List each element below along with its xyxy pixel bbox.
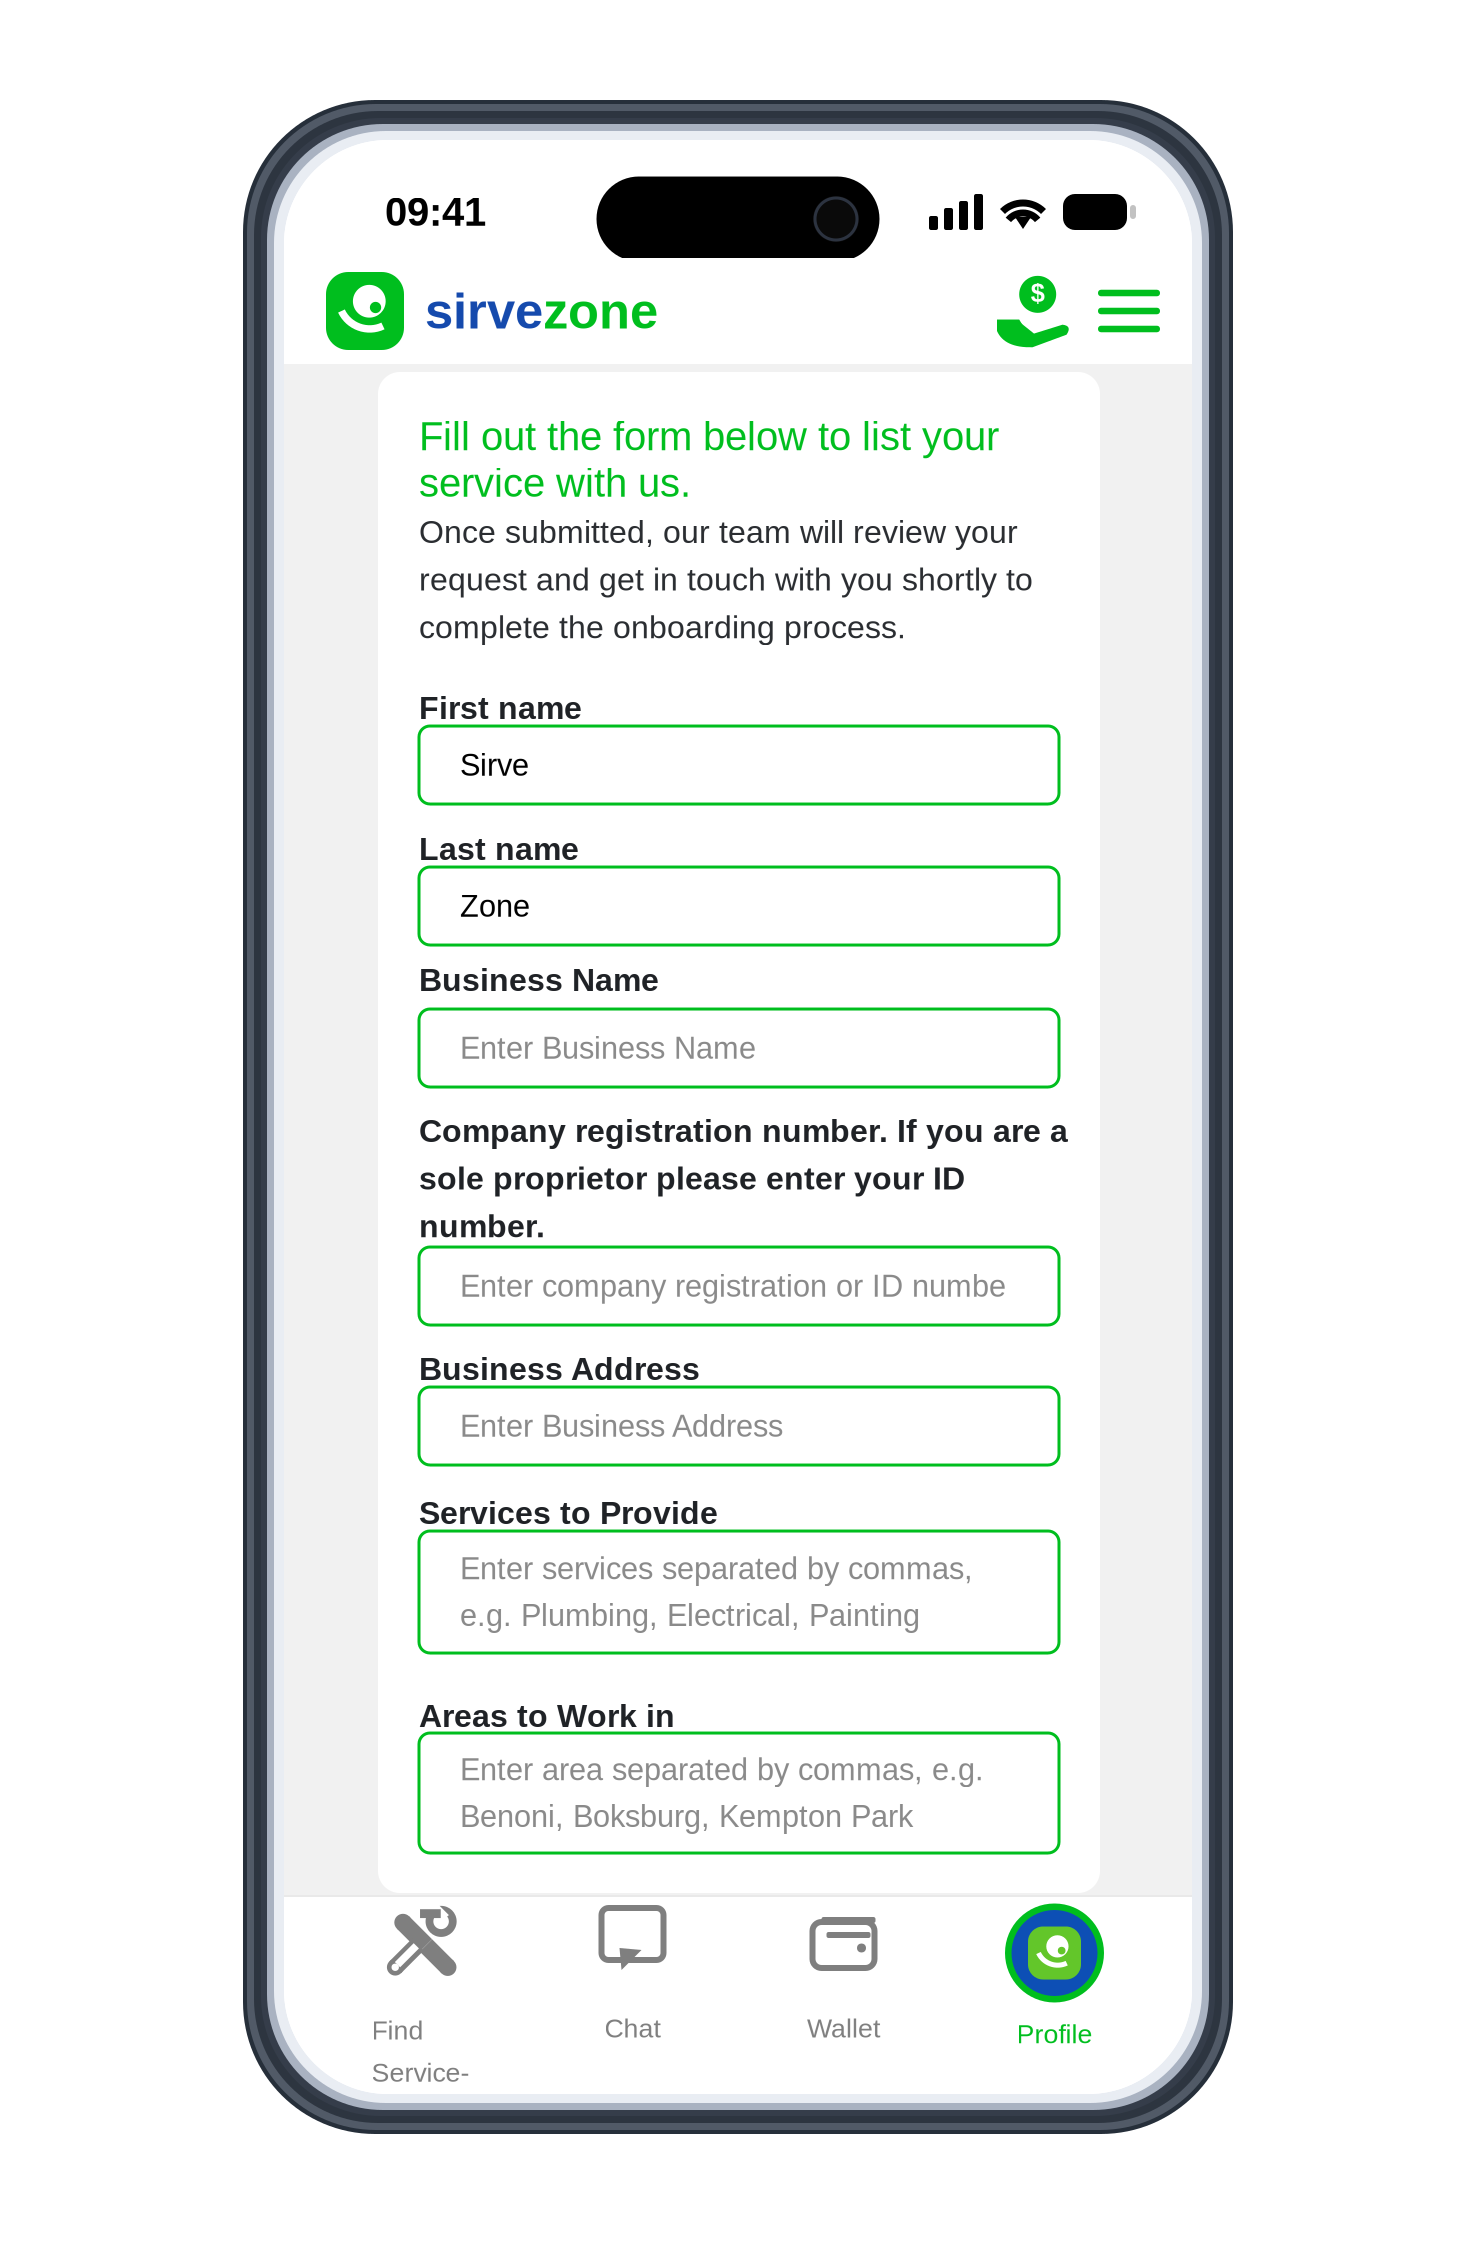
button[interactable]: Enter Business Name <box>419 1009 1059 1087</box>
staticText: Once submitted, our team will review you… <box>419 508 1033 651</box>
staticText: Enter Business Name <box>460 1024 756 1071</box>
staticText: Company registration number. If you are … <box>419 1107 1068 1250</box>
staticText: Business Address <box>419 1345 700 1393</box>
staticText: Wallet <box>807 2007 880 2049</box>
staticText: $ <box>1031 279 1045 307</box>
staticText: Enter company registration or ID numbe <box>460 1262 1006 1309</box>
button[interactable]: Zone <box>419 867 1059 945</box>
button[interactable]: Enter Business Address <box>419 1387 1059 1465</box>
staticText: Areas to Work in <box>419 1692 675 1740</box>
staticText: Profile <box>1016 2019 1092 2049</box>
staticText: Zone <box>460 882 530 929</box>
staticText: Enter services separated by commas, e.g.… <box>460 1545 973 1639</box>
staticText: Who does your work? Do you have employee… <box>419 1895 959 1990</box>
staticText: zone <box>543 283 658 339</box>
button[interactable]: Profile <box>949 1891 1160 2100</box>
button[interactable]: Enter company registration or ID numbe <box>419 1247 1059 1325</box>
staticText: Enter area separated by commas, e.g. Ben… <box>460 1746 984 1840</box>
staticText: Enter Business Address <box>460 1402 783 1449</box>
staticText: Last name <box>419 825 579 873</box>
staticText: Services to Provide <box>419 1489 718 1537</box>
staticText: Sirve <box>460 741 529 788</box>
button[interactable]: Enter services separated by commas, e.g.… <box>419 1531 1059 1653</box>
button[interactable]: Sirve <box>419 726 1059 804</box>
button[interactable]: Wallet <box>738 1890 949 2101</box>
button[interactable]: Menu <box>1082 269 1176 353</box>
staticText: Chat <box>604 2007 660 2049</box>
button[interactable]: Chat <box>527 1890 738 2101</box>
staticText: Business Name <box>419 956 659 1004</box>
button[interactable]: Earnings <box>986 269 1082 353</box>
staticText: Find Services <box>371 2009 469 2136</box>
staticText: Fill out the form below to list your ser… <box>419 413 999 506</box>
staticText: sirve <box>425 283 543 339</box>
button[interactable]: Enter area separated by commas, e.g. Ben… <box>419 1733 1059 1853</box>
staticText: First name <box>419 684 582 732</box>
staticText: 09:41 <box>385 190 486 234</box>
button[interactable]: Find Services <box>316 1890 527 2101</box>
